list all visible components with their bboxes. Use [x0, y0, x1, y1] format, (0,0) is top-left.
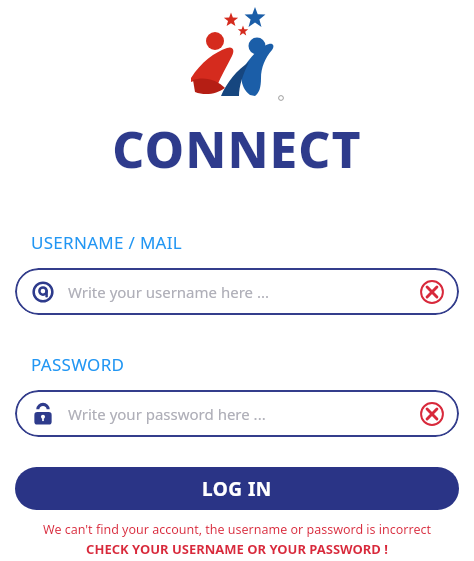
- button[interactable]: Clear field: [415, 275, 449, 309]
- button[interactable]: Write your password here ...: [15, 390, 459, 437]
- staticText: LOG IN: [202, 476, 272, 502]
- staticText: Write your password here ...: [68, 404, 266, 424]
- staticText: USERNAME / MAIL: [31, 231, 183, 254]
- staticText: CHECK YOUR USERNAME OR YOUR PASSWORD !: [86, 540, 388, 558]
- button[interactable]: Clear field: [415, 397, 449, 431]
- staticText: Write your username here ...: [68, 282, 269, 302]
- button[interactable]: LOG IN: [15, 467, 459, 510]
- staticText: We can't find your account, the username…: [43, 521, 431, 538]
- staticText: PASSWORD: [31, 353, 125, 376]
- staticText: CONNECT: [112, 115, 362, 183]
- button[interactable]: Write your username here ...: [15, 268, 459, 315]
